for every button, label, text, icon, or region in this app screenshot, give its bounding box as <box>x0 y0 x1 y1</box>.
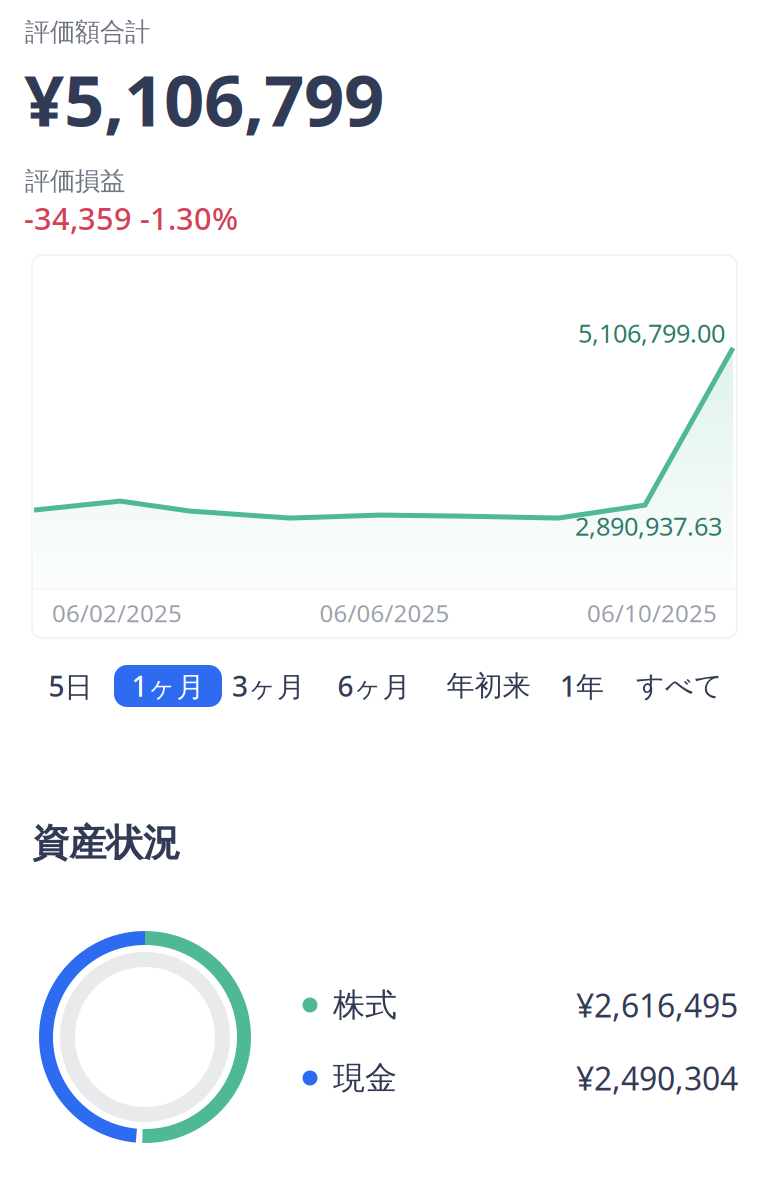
button[interactable]: 1年 <box>528 665 636 707</box>
staticText: 5日 <box>48 667 92 705</box>
staticText: 資産状況 <box>32 820 180 866</box>
staticText: すべて <box>636 669 723 703</box>
staticText: 評価損益 <box>25 165 125 196</box>
staticText: ¥2,490,304 <box>576 1057 738 1099</box>
button[interactable]: 株式 <box>295 983 745 1027</box>
staticText: 評価額合計 <box>25 16 150 47</box>
button[interactable]: 5日 <box>16 665 124 707</box>
staticText: 06/06/2025 <box>319 597 449 629</box>
staticText: 年初来 <box>446 669 530 703</box>
staticText: 株式 <box>333 985 397 1025</box>
staticText: 5,106,799.00 <box>578 316 725 350</box>
staticText: 6ヶ月 <box>337 667 410 705</box>
staticText: 06/10/2025 <box>587 597 717 629</box>
staticText: ¥5,106,799 <box>24 52 384 146</box>
button[interactable]: 3ヶ月 <box>214 665 322 707</box>
staticText: 3ヶ月 <box>232 667 305 705</box>
staticText: 2,890,937.63 <box>575 509 722 543</box>
button[interactable]: 現金 <box>295 1056 745 1100</box>
button[interactable]: 6ヶ月 <box>320 665 428 707</box>
button[interactable]: すべて <box>625 665 733 707</box>
staticText: -34,359 -1.30% <box>24 198 238 238</box>
staticText: 1ヶ月 <box>131 667 204 705</box>
staticText: 現金 <box>333 1058 397 1098</box>
button[interactable]: 1ヶ月 <box>114 665 222 707</box>
button[interactable]: 年初来 <box>434 665 542 707</box>
staticText: 1年 <box>560 667 604 705</box>
staticText: 06/02/2025 <box>52 597 182 629</box>
staticText: ¥2,616,495 <box>576 984 738 1026</box>
